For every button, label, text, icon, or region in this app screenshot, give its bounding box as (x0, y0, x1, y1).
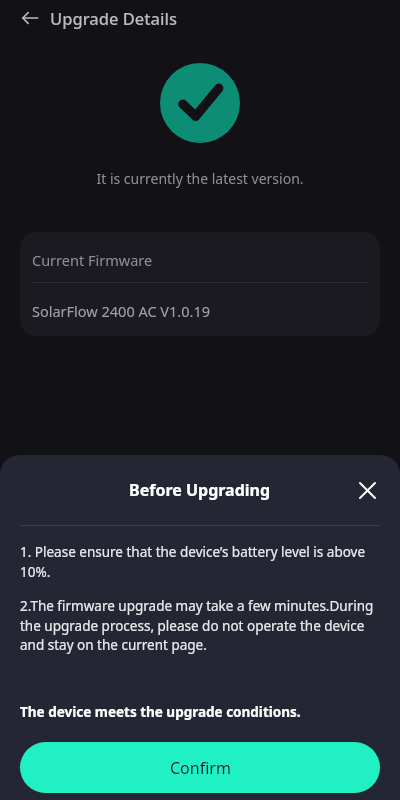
staticText: 2.The firmware upgrade may take a few mi… (20, 597, 380, 654)
button[interactable]: Close (351, 474, 383, 506)
staticText: 1. Please ensure that the device’s batte… (20, 543, 380, 581)
button[interactable]: Back (14, 2, 46, 34)
staticText: SolarFlow 2400 AC V1.0.19 (32, 301, 211, 321)
button[interactable]: Confirm (20, 742, 380, 793)
button[interactable]: Current Firmware (20, 232, 380, 336)
staticText: Before Upgrading (129, 479, 271, 501)
staticText: The device meets the upgrade conditions. (20, 703, 301, 721)
staticText: It is currently the latest version. (96, 169, 304, 188)
staticText: Current Firmware (32, 250, 153, 270)
staticText: Confirm (170, 757, 231, 779)
staticText: Upgrade Details (50, 7, 177, 29)
